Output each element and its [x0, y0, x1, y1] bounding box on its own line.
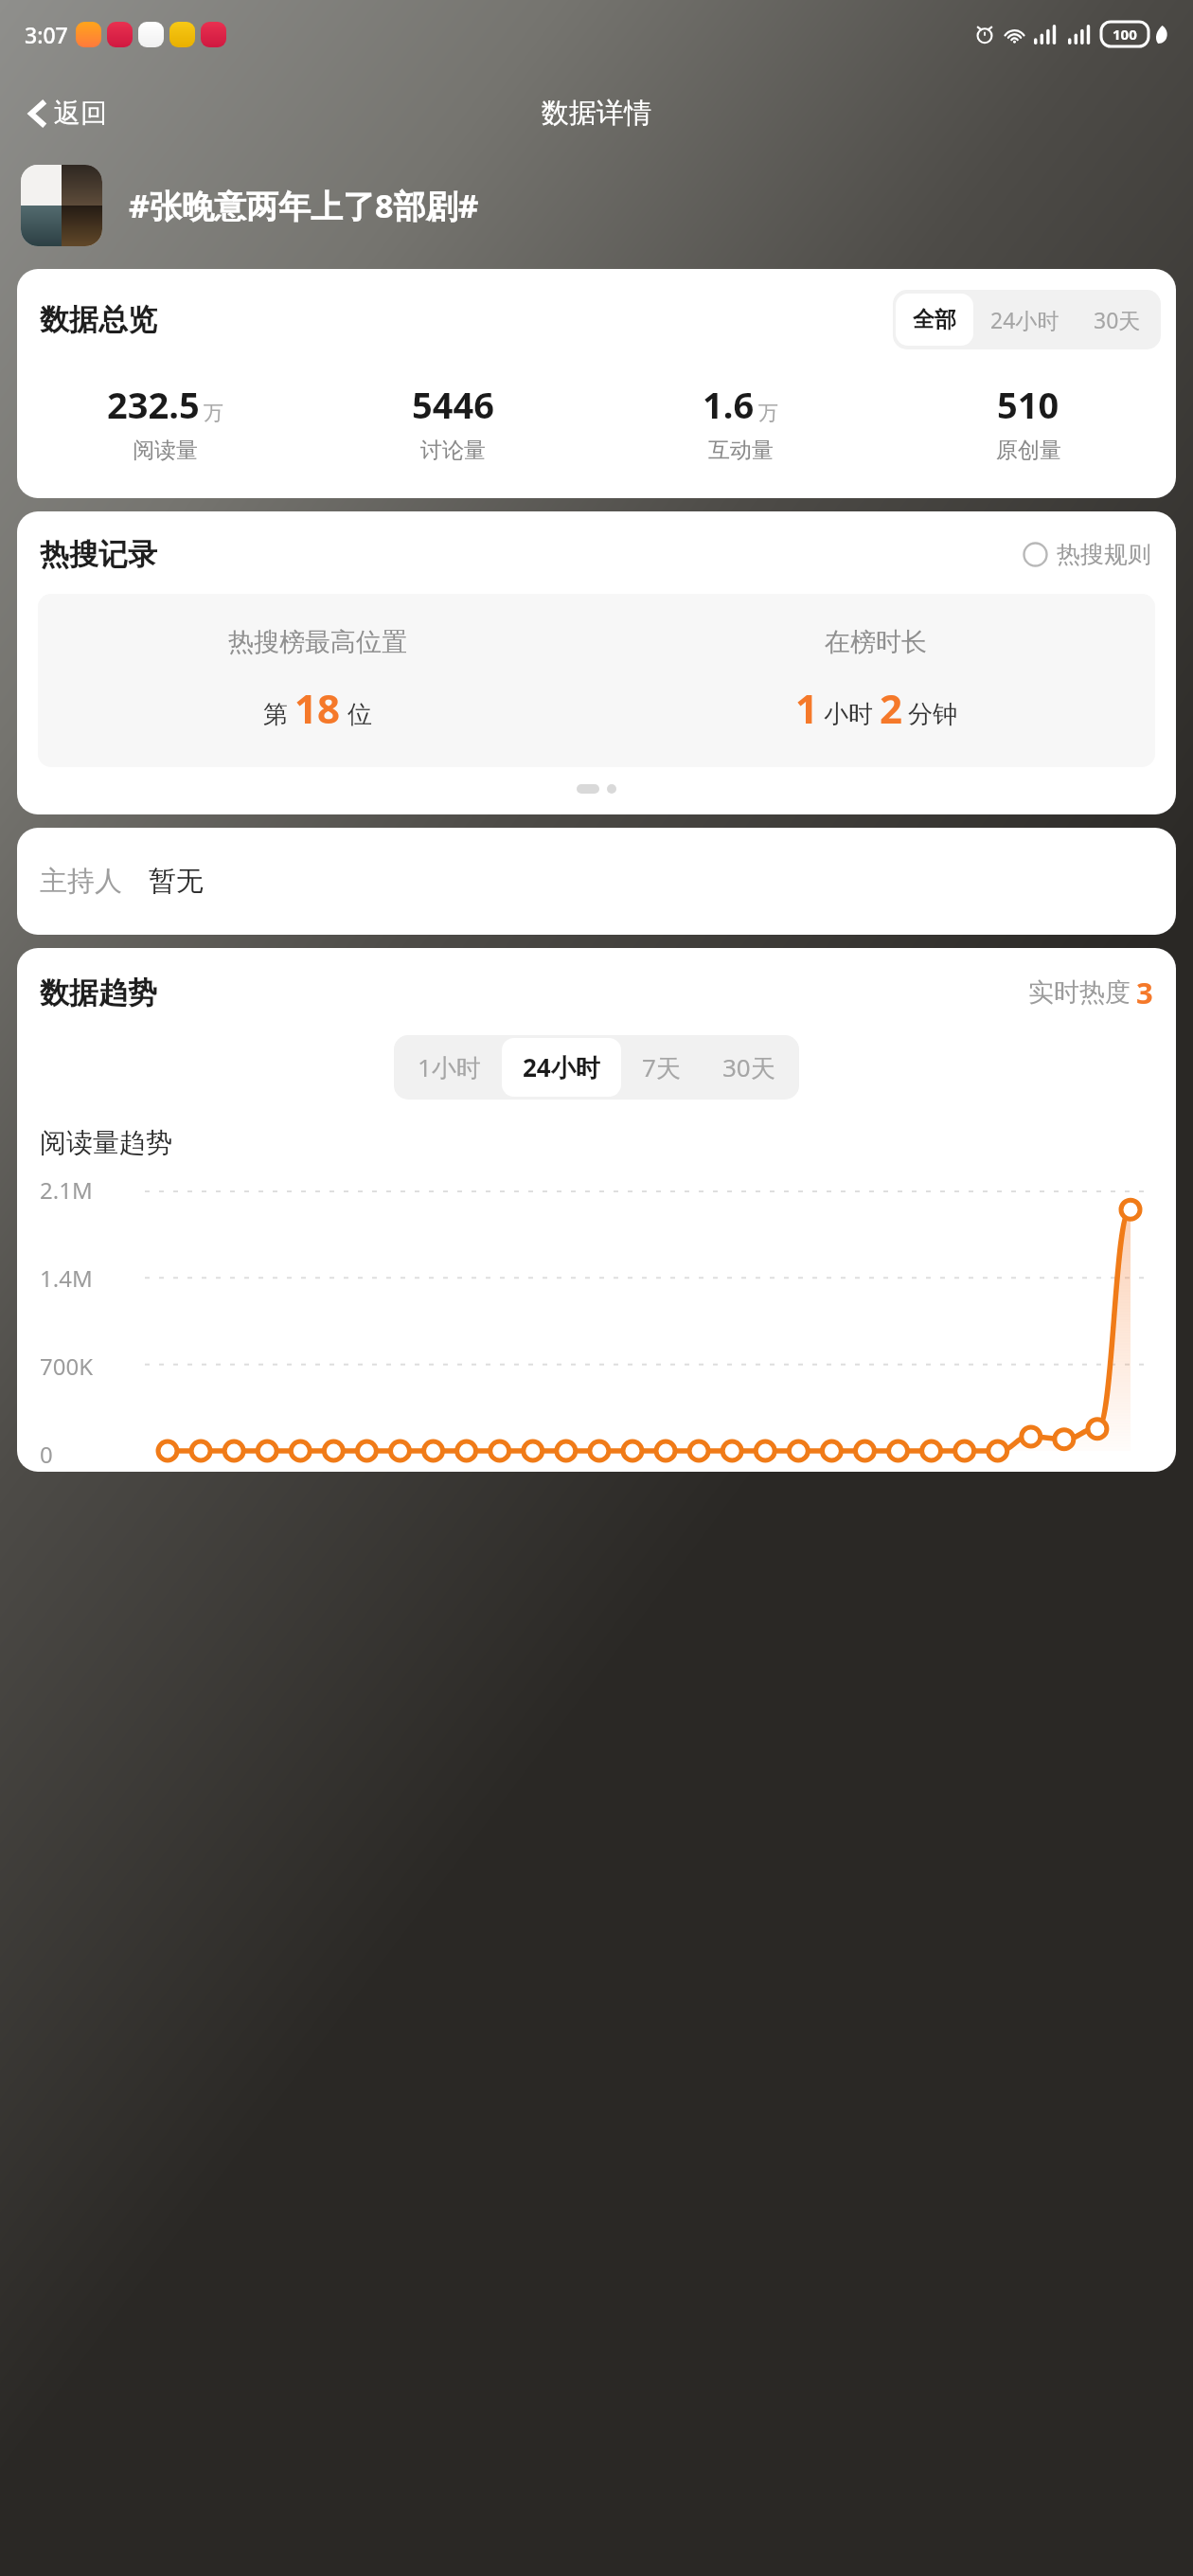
staticText: 返回	[54, 97, 107, 130]
button[interactable]: 主持人	[17, 828, 1176, 935]
button[interactable]: 1小时	[397, 1038, 502, 1097]
button[interactable]: 热搜规则	[1019, 536, 1155, 573]
button[interactable]: 5446	[309, 380, 596, 464]
staticText: 第	[263, 699, 288, 730]
staticText: 232.5	[107, 380, 200, 429]
staticText: 小时	[824, 699, 873, 730]
staticText: 数据总览	[40, 301, 157, 338]
staticText: 热搜记录	[40, 536, 157, 573]
staticText: 1.6	[703, 380, 755, 429]
button[interactable]: 30天	[702, 1038, 796, 1097]
button[interactable]: 全部	[896, 294, 973, 346]
button[interactable]: 7天	[621, 1038, 702, 1097]
staticText: 5446	[412, 380, 494, 429]
staticText: 30天	[722, 1050, 775, 1084]
other: 热搜规则	[1023, 542, 1048, 567]
staticText: 阅读量	[133, 437, 198, 464]
staticText: 7天	[642, 1050, 681, 1084]
staticText: 数据趋势	[40, 975, 157, 1011]
staticText: #张晚意两年上了8部剧#	[129, 184, 479, 227]
staticText: 24小时	[990, 305, 1059, 334]
button[interactable]: 24小时	[502, 1038, 621, 1097]
staticText: 在榜时长	[825, 626, 927, 658]
button[interactable]: 24小时	[973, 293, 1077, 347]
staticText: 原创量	[996, 437, 1061, 464]
staticText: 热搜规则	[1057, 540, 1151, 569]
staticText: 18	[294, 681, 341, 735]
staticText: 主持人	[40, 864, 122, 899]
staticText: 0	[40, 1439, 53, 1470]
staticText: 数据详情	[542, 96, 651, 131]
staticText: 1.4M	[40, 1262, 93, 1294]
staticText: 讨论量	[420, 437, 486, 464]
button[interactable]: 232.5	[21, 380, 309, 464]
staticText: 510	[997, 380, 1059, 429]
staticText: 30天	[1094, 305, 1141, 334]
staticText: 3	[1136, 973, 1153, 1012]
staticText: 暂无	[149, 864, 204, 899]
button[interactable]: 热搜榜最高位置	[38, 594, 1155, 767]
staticText: 2	[880, 681, 903, 735]
staticText: 实时热度	[1028, 976, 1131, 1009]
staticText: 100	[1113, 25, 1137, 44]
staticText: 万	[758, 401, 778, 425]
staticText: 热搜榜最高位置	[228, 626, 407, 658]
staticText: 万	[204, 401, 223, 425]
staticText: 1小时	[418, 1050, 481, 1084]
staticText: 3:07	[25, 20, 68, 49]
button[interactable]: 1.6	[596, 380, 884, 464]
staticText: 700K	[40, 1351, 94, 1382]
button[interactable]: 510	[884, 380, 1172, 464]
staticText: 阅读量趋势	[40, 1126, 172, 1159]
staticText: 互动量	[708, 437, 774, 464]
button[interactable]: 实时热度	[1028, 973, 1153, 1012]
button[interactable]: 30天	[1077, 293, 1158, 347]
button[interactable]: 返回	[13, 89, 116, 137]
staticText: 24小时	[523, 1050, 600, 1084]
staticText: 1	[795, 681, 819, 735]
staticText: 全部	[913, 306, 956, 333]
staticText: 2.1M	[40, 1174, 93, 1206]
button[interactable]: #张晚意两年上了8部剧#	[21, 165, 1172, 246]
staticText: 位	[347, 699, 372, 730]
staticText: 分钟	[908, 699, 957, 730]
